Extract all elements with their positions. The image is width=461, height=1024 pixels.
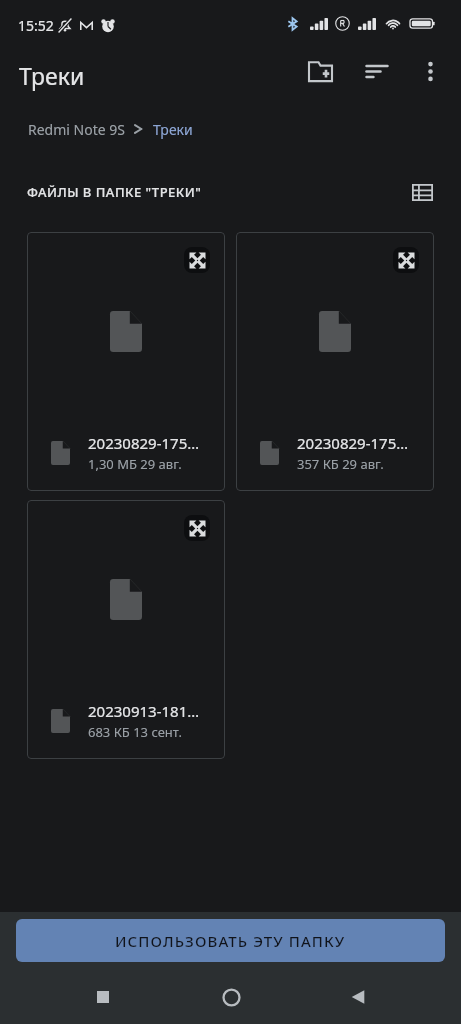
staticText: Треки <box>19 60 85 91</box>
button[interactable]: Redmi Note 9S <box>28 115 125 144</box>
button[interactable]: Back <box>334 973 382 1021</box>
button[interactable]: List view <box>404 174 440 210</box>
staticText: ФАЙЛЫ В ПАПКЕ "ТРЕКИ" <box>27 183 202 201</box>
staticText: ИСПОЛЬЗОВАТЬ ЭТУ ПАПКУ <box>115 931 346 951</box>
button[interactable]: Sort <box>353 48 400 95</box>
button[interactable]: More options <box>407 48 454 95</box>
staticText: 357 КБ 29 авг. <box>297 455 384 473</box>
staticText: 15:52 <box>18 16 54 35</box>
button[interactable]: Expand <box>236 232 434 491</box>
button[interactable]: Home <box>207 973 255 1021</box>
staticText: 20230829-175… <box>88 433 200 453</box>
button[interactable]: Expand <box>393 247 419 273</box>
staticText: 20230829-175… <box>297 433 409 453</box>
button[interactable]: New folder <box>297 48 344 95</box>
staticText: 20230913-181… <box>88 701 200 721</box>
staticText: Redmi Note 9S <box>28 120 125 139</box>
button[interactable]: Expand <box>184 247 210 273</box>
button[interactable]: Expand <box>27 232 225 491</box>
staticText: 1,30 МБ 29 авг. <box>88 455 182 473</box>
button[interactable]: Expand <box>27 500 225 759</box>
button[interactable]: Recents <box>79 973 127 1021</box>
button[interactable]: ИСПОЛЬЗОВАТЬ ЭТУ ПАПКУ <box>16 919 445 962</box>
button[interactable]: Треки <box>153 115 193 144</box>
staticText: Треки <box>153 120 193 139</box>
button[interactable]: Expand <box>184 515 210 541</box>
staticText: 683 КБ 13 сент. <box>88 723 182 741</box>
